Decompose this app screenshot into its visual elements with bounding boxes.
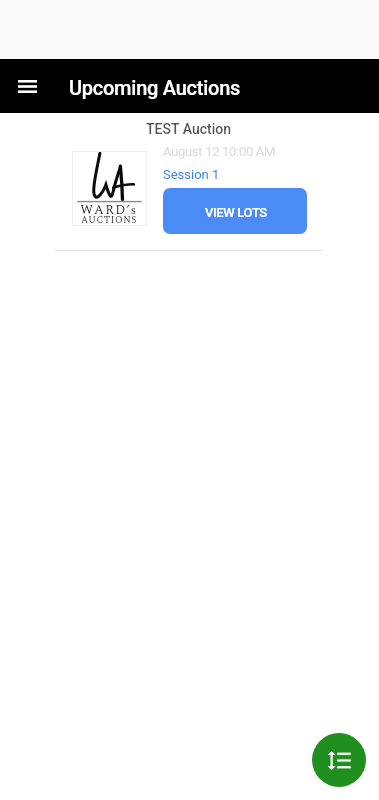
staticText: Upcoming Auctions [69,76,241,99]
staticText: August 12 10:00 AM [163,144,276,159]
button[interactable]: Open navigation menu [9,68,45,104]
button[interactable]: Sort auctions [312,733,366,787]
staticText: WARD’s [80,200,138,220]
staticText: VIEW LOTS [205,205,267,220]
staticText: TEST Auction [55,121,322,137]
staticText: Session 1 [163,167,220,182]
staticText: AUCTIONS [81,213,137,227]
button[interactable]: VIEW LOTS [163,188,307,234]
